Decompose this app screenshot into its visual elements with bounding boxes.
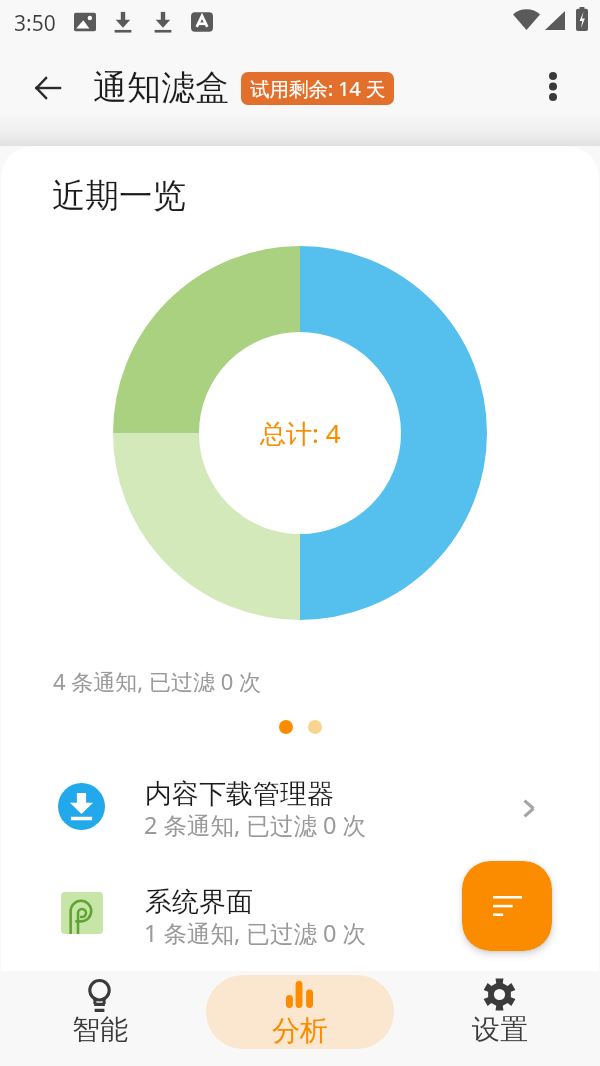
staticText: 系统界面 bbox=[145, 885, 253, 919]
staticText: 通知滤盒 bbox=[93, 66, 229, 109]
button[interactable]: 分析 bbox=[206, 975, 394, 1049]
button[interactable]: 设置 bbox=[414, 974, 586, 1058]
staticText: 智能 bbox=[72, 1012, 128, 1047]
button[interactable]: 智能 bbox=[14, 974, 186, 1058]
staticText: 近期一览 bbox=[52, 175, 186, 217]
staticText: 1 条通知, 已过滤 0 次 bbox=[144, 917, 367, 949]
staticText: 2 条通知, 已过滤 0 次 bbox=[144, 809, 367, 841]
button[interactable]: 内容下载管理器 bbox=[1, 767, 599, 867]
staticText: 总计: 4 bbox=[260, 415, 341, 451]
button[interactable]: More options bbox=[525, 58, 581, 114]
staticText: 试用剩余: 14 天 bbox=[250, 75, 386, 102]
button[interactable]: 系统界面 bbox=[1, 875, 599, 971]
button[interactable]: Sort bbox=[462, 861, 552, 951]
button[interactable]: 试用剩余: 14 天 bbox=[241, 72, 394, 105]
staticText: 分析 bbox=[272, 1013, 328, 1048]
staticText: 设置 bbox=[472, 1012, 528, 1047]
staticText: 4 条通知, 已过滤 0 次 bbox=[53, 666, 261, 696]
staticText: 3:50 bbox=[14, 9, 56, 38]
staticText: 内容下载管理器 bbox=[145, 777, 334, 811]
button[interactable]: Back bbox=[22, 62, 74, 114]
